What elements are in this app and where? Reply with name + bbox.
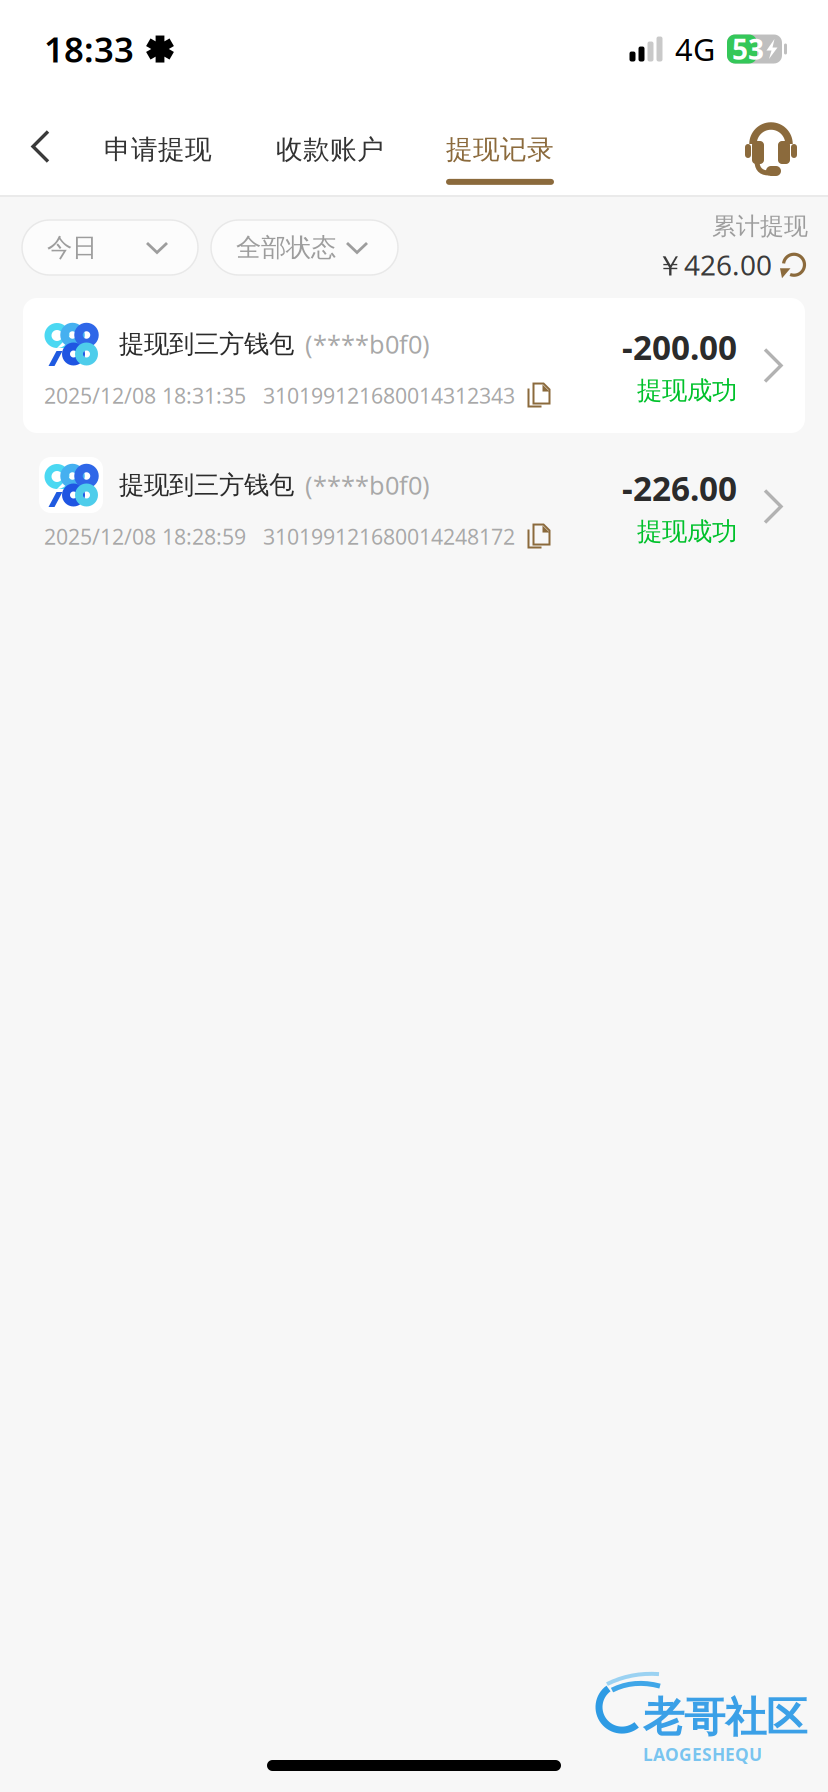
button[interactable]: 提现到三方钱包 xyxy=(23,439,805,574)
staticText: 老哥社区 xyxy=(643,1692,807,1743)
button[interactable]: Refresh xyxy=(780,251,808,279)
button[interactable]: 今日 xyxy=(22,220,198,275)
staticText: LAOGESHEQU xyxy=(643,1743,762,1766)
staticText: -200.00 xyxy=(622,325,737,369)
staticText: 收款账户 xyxy=(276,133,384,166)
staticText: 提现记录 xyxy=(446,133,554,166)
button[interactable]: Customer service xyxy=(744,116,798,176)
staticText: (****b0f0) xyxy=(305,468,430,502)
staticText: (****b0f0) xyxy=(305,327,430,361)
button[interactable]: 全部状态 xyxy=(211,220,398,275)
staticText: 4G xyxy=(675,29,715,69)
button[interactable]: 申请提现 xyxy=(104,98,212,195)
staticText: 2025/12/08 18:31:35 xyxy=(44,381,246,410)
button[interactable]: 提现到三方钱包 xyxy=(23,298,805,433)
staticText: 申请提现 xyxy=(104,133,212,166)
staticText: 提现到三方钱包 xyxy=(119,328,294,359)
staticText: 全部状态 xyxy=(236,232,336,263)
button[interactable]: 收款账户 xyxy=(276,98,384,195)
staticText: ￥426.00 xyxy=(656,246,772,283)
staticText: 310199121680014312343 xyxy=(263,381,515,410)
staticText: 提现到三方钱包 xyxy=(119,469,294,500)
staticText: 提现成功 xyxy=(637,375,737,406)
staticText: 18:33 xyxy=(44,26,134,72)
button[interactable]: Back xyxy=(20,114,76,178)
staticText: 提现成功 xyxy=(637,516,737,547)
staticText: 53 xyxy=(732,30,764,68)
staticText: 310199121680014248172 xyxy=(263,522,515,551)
staticText: -226.00 xyxy=(622,466,737,510)
button[interactable]: 提现记录 xyxy=(446,98,554,195)
staticText: 今日 xyxy=(47,232,97,263)
staticText: 累计提现 xyxy=(712,212,808,241)
staticText: 2025/12/08 18:28:59 xyxy=(44,522,246,551)
